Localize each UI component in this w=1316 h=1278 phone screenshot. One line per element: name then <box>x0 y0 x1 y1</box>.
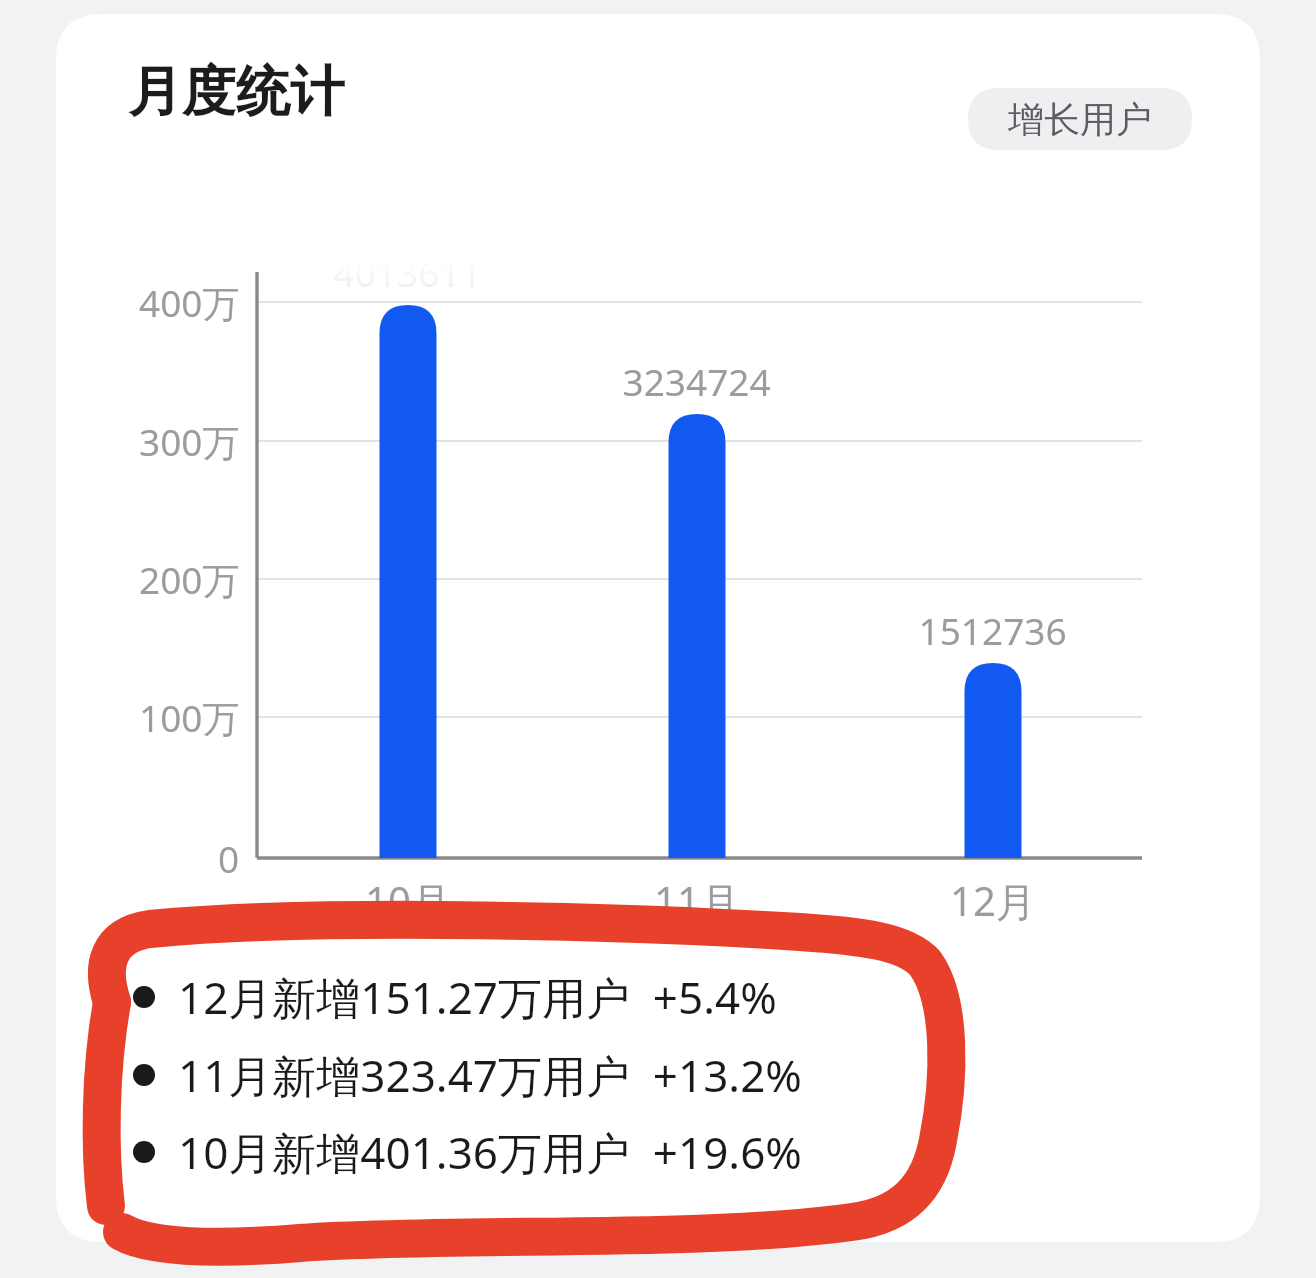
button[interactable]: 月度统计图表 <box>0 0 1316 1278</box>
